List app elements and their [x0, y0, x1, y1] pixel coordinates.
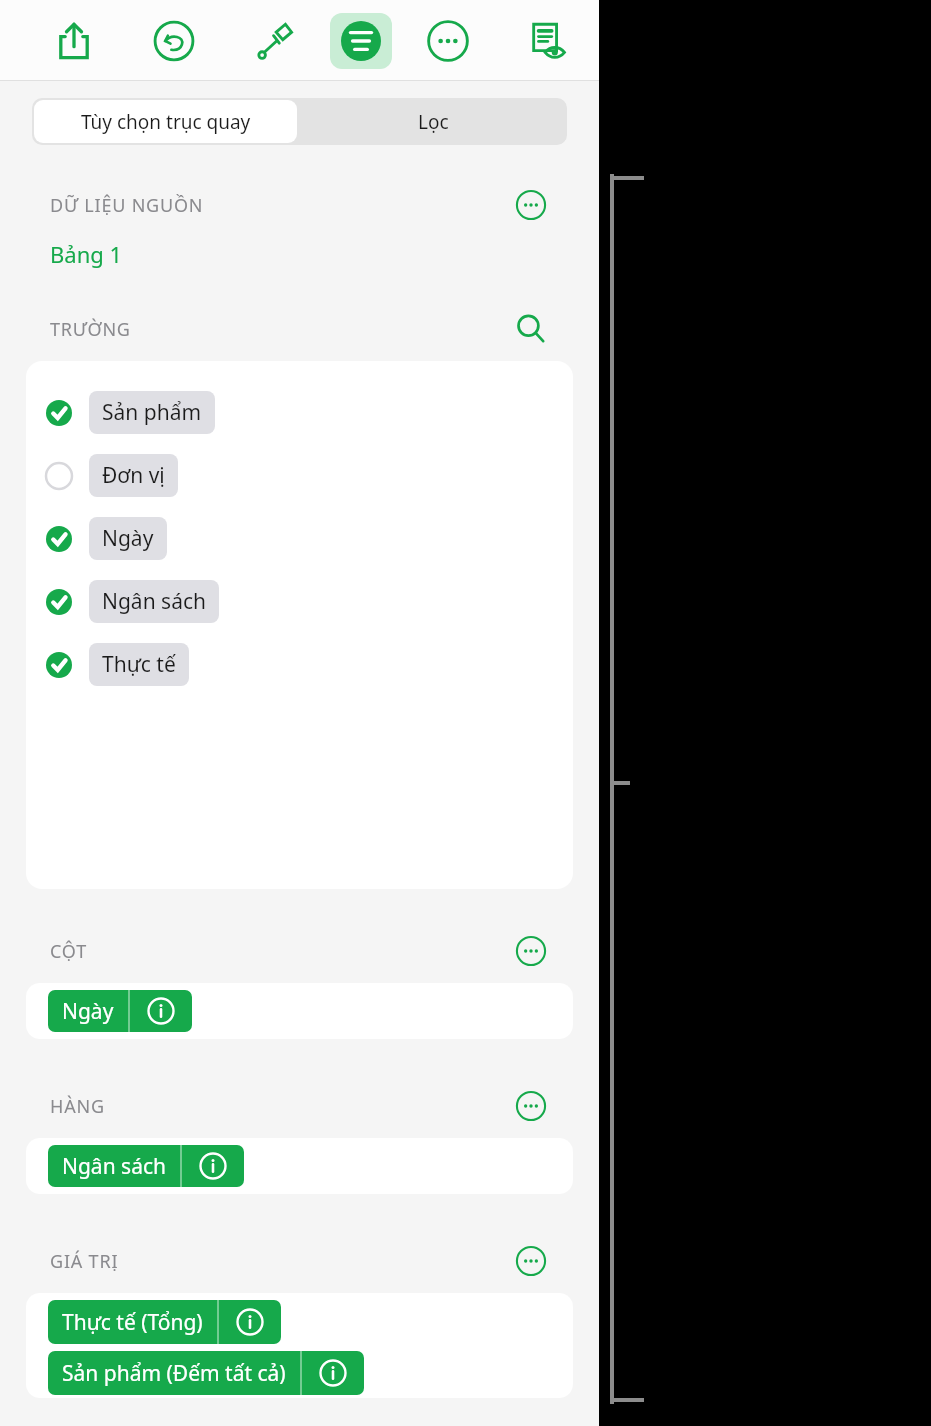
staticText: Bảng 1 — [50, 239, 123, 269]
button[interactable]: Sản phẩm — [26, 381, 573, 444]
button[interactable]: HÀNG options — [509, 1084, 553, 1128]
staticText: Ngân sách — [62, 1152, 166, 1181]
button[interactable]: Ngày — [48, 990, 192, 1032]
button[interactable]: Ngày — [26, 507, 573, 570]
staticText: HÀNG — [50, 1094, 105, 1119]
staticText: Sản phẩm — [102, 398, 202, 427]
button[interactable]: Đơn vị — [26, 444, 573, 507]
staticText: Thực tế — [102, 650, 176, 679]
button[interactable]: Share — [46, 13, 102, 69]
button[interactable]: DỮ LIỆU NGUỒN options — [509, 183, 553, 227]
other: Info Ngân sách — [182, 1145, 244, 1187]
other: Info Ngày — [130, 990, 192, 1032]
staticText: Ngày — [102, 524, 154, 553]
staticText: Đơn vị — [102, 461, 165, 490]
button[interactable]: Document preview — [518, 13, 574, 69]
button[interactable]: Tùy chọn trục quay — [34, 100, 297, 143]
button[interactable]: Undo — [146, 13, 202, 69]
staticText: Thực tế (Tổng) — [62, 1308, 203, 1337]
button[interactable]: Ngân sách — [26, 570, 573, 633]
staticText: Tùy chọn trục quay — [81, 109, 251, 135]
button[interactable]: CỘT options — [509, 929, 553, 973]
staticText: Ngày — [62, 997, 114, 1026]
staticText: DỮ LIỆU NGUỒN — [50, 193, 204, 218]
button[interactable]: Ngân sách — [48, 1145, 244, 1187]
staticText: Ngân sách — [102, 587, 206, 616]
button[interactable]: More — [420, 13, 476, 69]
button[interactable]: Thực tế (Tổng) — [48, 1300, 281, 1344]
staticText: TRƯỜNG — [50, 317, 131, 342]
button[interactable]: Format — [246, 13, 302, 69]
other: Info Thực tế (Tổng) — [219, 1300, 281, 1344]
staticText: Sản phẩm (Đếm tất cả) — [62, 1359, 286, 1388]
button[interactable]: GIÁ TRỊ options — [509, 1239, 553, 1283]
button[interactable]: Lọc — [299, 98, 567, 145]
button[interactable]: TRƯỜNG options — [509, 307, 553, 351]
staticText: GIÁ TRỊ — [50, 1249, 119, 1274]
staticText: Lọc — [418, 109, 449, 135]
button[interactable]: Thực tế — [26, 633, 573, 696]
staticText: CỘT — [50, 939, 87, 964]
button[interactable]: Sản phẩm (Đếm tất cả) — [48, 1351, 364, 1395]
button[interactable]: Pivot options — [330, 13, 392, 69]
other: Info Sản phẩm (Đếm tất cả) — [302, 1351, 364, 1395]
